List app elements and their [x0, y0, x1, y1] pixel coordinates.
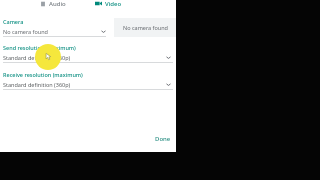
staticText: Standard definition (360p) [3, 54, 71, 61]
staticText: Video [105, 0, 122, 8]
button[interactable]: Standard definition (360p) [3, 52, 173, 63]
button[interactable]: Done [152, 133, 174, 145]
button[interactable]: Audio [40, 0, 66, 10]
staticText: Send resolution (maximum) [3, 44, 76, 51]
staticText: No camera found [3, 28, 48, 35]
staticText: Standard definition (360p) [3, 81, 71, 88]
staticText: Camera [3, 18, 24, 25]
staticText: No camera found [123, 24, 168, 31]
button[interactable]: Standard definition (360p) [3, 79, 173, 90]
button[interactable]: Video [95, 0, 122, 10]
staticText: Done [155, 135, 171, 143]
staticText: Receive resolution (maximum) [3, 71, 83, 78]
staticText: Audio [49, 0, 66, 8]
button[interactable]: No camera found [3, 26, 106, 37]
